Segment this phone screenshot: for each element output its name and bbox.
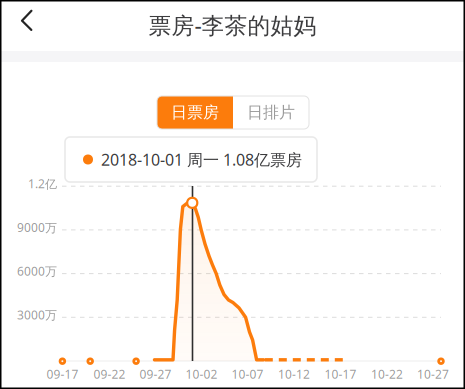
staticText: 日排片 <box>247 103 295 122</box>
staticText: 10-07 <box>231 366 263 382</box>
staticText: 10-12 <box>278 366 310 382</box>
staticText: 09-22 <box>93 366 125 382</box>
staticText: 票房-李茶的姑妈 <box>148 10 316 40</box>
staticText: 09-27 <box>139 366 171 382</box>
staticText: 2018-10-01 周一 1.08亿票房 <box>101 149 302 170</box>
staticText: 6000万 <box>17 263 57 279</box>
staticText: 10-27 <box>417 366 449 382</box>
staticText: 3000万 <box>17 307 57 323</box>
staticText: 日票房 <box>171 103 219 122</box>
staticText: 1.2亿 <box>28 176 57 192</box>
staticText: 10-17 <box>324 366 356 382</box>
staticText: 09-17 <box>46 366 78 382</box>
staticText: 10-22 <box>371 366 403 382</box>
button[interactable]: 日排片 <box>233 96 309 129</box>
staticText: 9000万 <box>17 219 57 235</box>
button[interactable]: 日票房 <box>157 96 233 129</box>
button[interactable]: Back <box>0 0 62 42</box>
staticText: 10-02 <box>185 366 217 382</box>
